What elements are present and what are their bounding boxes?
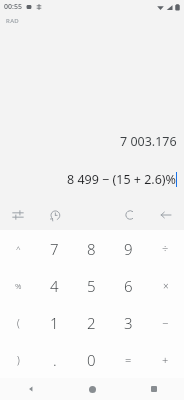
staticText: 0: [87, 350, 96, 370]
staticText: 9: [124, 239, 133, 259]
button[interactable]: 4: [36, 267, 73, 304]
staticText: RAD: [6, 17, 20, 25]
staticText: (: [17, 316, 20, 330]
button[interactable]: 7: [36, 230, 73, 267]
button[interactable]: ÷: [147, 230, 184, 267]
button[interactable]: =: [110, 341, 147, 378]
staticText: 7: [50, 239, 59, 259]
button[interactable]: 8: [73, 230, 110, 267]
staticText: ): [17, 353, 20, 367]
button[interactable]: 5: [73, 267, 110, 304]
button[interactable]: Back: [0, 378, 62, 400]
staticText: =: [125, 352, 132, 367]
button[interactable]: %: [0, 267, 36, 304]
staticText: ^: [16, 243, 21, 254]
staticText: 8: [87, 239, 96, 259]
staticText: 5: [87, 276, 96, 296]
staticText: %: [15, 280, 22, 291]
staticText: 4: [50, 276, 59, 296]
staticText: ×: [163, 279, 169, 293]
staticText: +: [162, 352, 169, 367]
button[interactable]: 3: [110, 304, 147, 341]
staticText: 7 003.176: [120, 133, 177, 150]
button[interactable]: Settings: [0, 200, 36, 230]
button[interactable]: RAD: [4, 14, 22, 28]
button[interactable]: +: [147, 341, 184, 378]
button[interactable]: 1: [36, 304, 73, 341]
button[interactable]: ): [0, 341, 36, 378]
button[interactable]: (: [0, 304, 36, 341]
staticText: 3: [124, 313, 133, 333]
button[interactable]: Home: [62, 378, 123, 400]
staticText: 00:55: [4, 2, 22, 12]
button[interactable]: −: [147, 304, 184, 341]
staticText: 1: [50, 313, 59, 333]
button[interactable]: Dark mode: [110, 200, 147, 230]
button[interactable]: ^: [0, 230, 36, 267]
button[interactable]: 6: [110, 267, 147, 304]
button[interactable]: Recents: [123, 378, 184, 400]
button[interactable]: ×: [147, 267, 184, 304]
staticText: 8 499 − (15 + 2.6)%: [67, 171, 176, 188]
staticText: .: [53, 350, 57, 370]
staticText: 2: [87, 313, 96, 333]
staticText: ÷: [162, 241, 169, 256]
staticText: 6: [124, 276, 133, 296]
button[interactable]: 0: [73, 341, 110, 378]
button[interactable]: Backspace: [147, 200, 184, 230]
staticText: −: [162, 315, 169, 330]
button[interactable]: 9: [110, 230, 147, 267]
button[interactable]: History: [36, 200, 73, 230]
button[interactable]: .: [36, 341, 73, 378]
button[interactable]: 2: [73, 304, 110, 341]
